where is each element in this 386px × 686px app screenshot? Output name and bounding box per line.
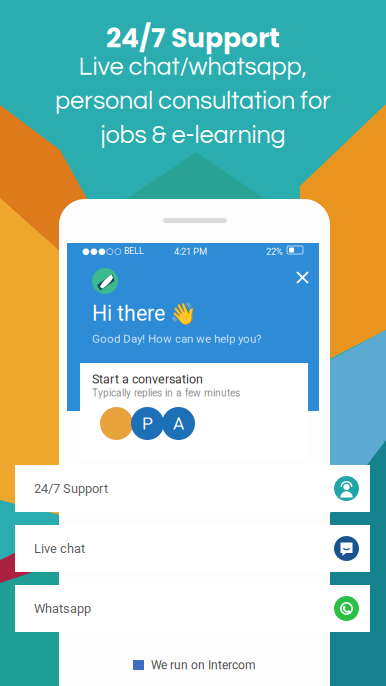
staticText: jobs & e-learning — [100, 122, 285, 148]
staticText: P — [142, 413, 153, 434]
button[interactable]: Live chat — [15, 525, 370, 572]
staticText: A — [173, 413, 184, 434]
staticText: 22% — [266, 246, 283, 257]
staticText: Good Day! How can we help you? — [92, 332, 261, 345]
button[interactable]: 24/7 Support — [15, 465, 370, 512]
staticText: We run on Intercom — [151, 658, 256, 672]
staticText: Whatsapp — [34, 601, 91, 616]
staticText: Live chat/whatsapp, — [78, 54, 307, 80]
staticText: ●●●○○ BELL — [82, 246, 144, 256]
staticText: 24/7 Support — [106, 19, 280, 57]
staticText: Start a conversation — [92, 372, 203, 386]
staticText: personal consultation for — [55, 88, 331, 114]
staticText: 4:21 PM — [174, 246, 207, 257]
staticText: Hi there 👋 — [92, 301, 197, 326]
button[interactable]: Whatsapp — [15, 585, 370, 632]
staticText: Live chat — [34, 541, 85, 556]
staticText: Typically replies in a few minutes — [92, 387, 240, 399]
staticText: 24/7 Support — [34, 481, 108, 496]
